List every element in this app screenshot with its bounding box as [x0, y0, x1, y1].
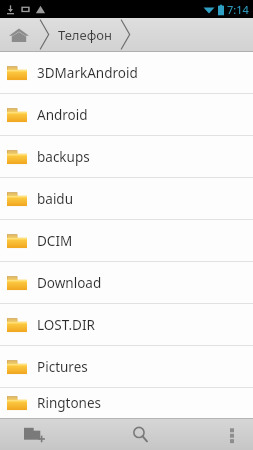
button[interactable]: Pictures: [0, 346, 253, 387]
button[interactable]: backups: [0, 136, 253, 177]
button[interactable]: Home: [0, 18, 38, 51]
staticText: Pictures: [37, 358, 88, 376]
staticText: backups: [37, 148, 90, 166]
button[interactable]: baidu: [0, 178, 253, 219]
button[interactable]: DCIM: [0, 220, 253, 261]
staticText: LOST.DIR: [37, 316, 95, 334]
button[interactable]: LOST.DIR: [0, 304, 253, 345]
button[interactable]: More options: [211, 419, 253, 450]
button[interactable]: Search: [112, 419, 168, 450]
button[interactable]: Download: [0, 262, 253, 303]
staticText: 7:14: [227, 2, 249, 17]
button[interactable]: Ringtones: [0, 388, 253, 418]
staticText: baidu: [37, 190, 74, 208]
button[interactable]: Android: [0, 94, 253, 135]
staticText: Телефон: [58, 26, 112, 44]
staticText: Download: [37, 274, 102, 292]
button[interactable]: Телефон: [51, 18, 119, 51]
staticText: 3DMarkAndroid: [37, 64, 138, 82]
button[interactable]: 3DMarkAndroid: [0, 52, 253, 93]
staticText: DCIM: [37, 232, 73, 250]
staticText: Android: [37, 106, 88, 124]
button[interactable]: New folder: [0, 419, 70, 450]
staticText: Ringtones: [37, 394, 101, 412]
